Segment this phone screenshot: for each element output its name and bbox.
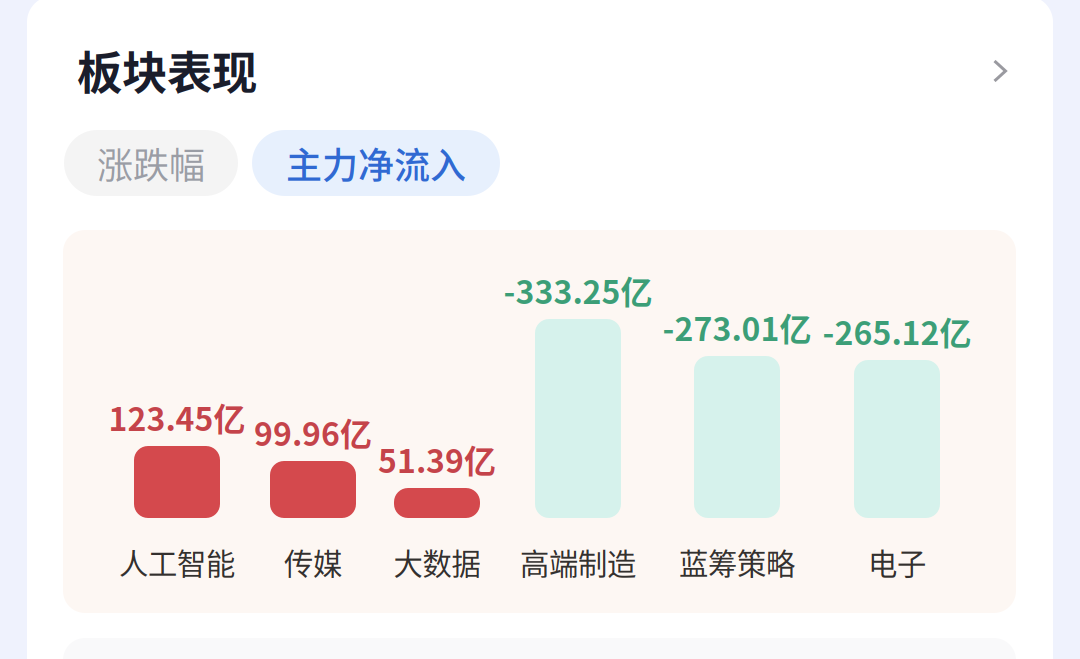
staticText: 高端制造 bbox=[520, 541, 636, 583]
button[interactable]: 99.96亿 bbox=[254, 409, 372, 455]
button[interactable]: -273.01亿 bbox=[662, 304, 811, 350]
staticText: 人工智能 bbox=[119, 541, 235, 583]
staticText: 板块表现 bbox=[77, 37, 257, 103]
button[interactable]: 传媒 99.96亿 bbox=[270, 461, 356, 518]
button[interactable]: 主力净流入 bbox=[252, 130, 500, 196]
button[interactable]: 人工智能 123.45亿 bbox=[134, 446, 220, 518]
staticText: -265.12亿 bbox=[822, 308, 971, 354]
button[interactable]: 蓝筹策略 -273.01亿 bbox=[694, 356, 780, 518]
staticText: 51.39亿 bbox=[378, 436, 496, 482]
button[interactable]: 大数据 51.39亿 bbox=[394, 488, 480, 518]
button[interactable]: 高端制造 -333.25亿 bbox=[535, 319, 621, 518]
staticText: -333.25亿 bbox=[503, 267, 652, 313]
staticText: 涨跌幅 bbox=[97, 137, 205, 189]
button[interactable]: -265.12亿 bbox=[822, 308, 971, 354]
button[interactable]: 涨跌幅 bbox=[64, 130, 238, 196]
staticText: 传媒 bbox=[284, 541, 342, 583]
button[interactable]: -333.25亿 bbox=[503, 267, 652, 313]
button[interactable]: 51.39亿 bbox=[378, 436, 496, 482]
button[interactable]: 传媒 bbox=[284, 541, 342, 583]
button[interactable]: 电子 bbox=[868, 541, 926, 583]
button[interactable]: 123.45亿 bbox=[108, 394, 245, 440]
staticText: 大数据 bbox=[393, 541, 480, 583]
button[interactable]: 板块表现 bbox=[77, 37, 257, 103]
staticText: -273.01亿 bbox=[662, 304, 811, 350]
button[interactable]: 查看全部板块表现 bbox=[972, 43, 1028, 99]
staticText: 99.96亿 bbox=[254, 409, 372, 455]
staticText: 主力净流入 bbox=[286, 137, 466, 189]
staticText: 蓝筹策略 bbox=[679, 541, 795, 583]
button[interactable]: 高端制造 bbox=[520, 541, 636, 583]
button[interactable]: 人工智能 bbox=[119, 541, 235, 583]
staticText: 123.45亿 bbox=[108, 394, 245, 440]
button[interactable]: 电子 -265.12亿 bbox=[854, 360, 940, 518]
button[interactable]: 蓝筹策略 bbox=[679, 541, 795, 583]
staticText: 电子 bbox=[868, 541, 926, 583]
button[interactable]: 大数据 bbox=[393, 541, 480, 583]
